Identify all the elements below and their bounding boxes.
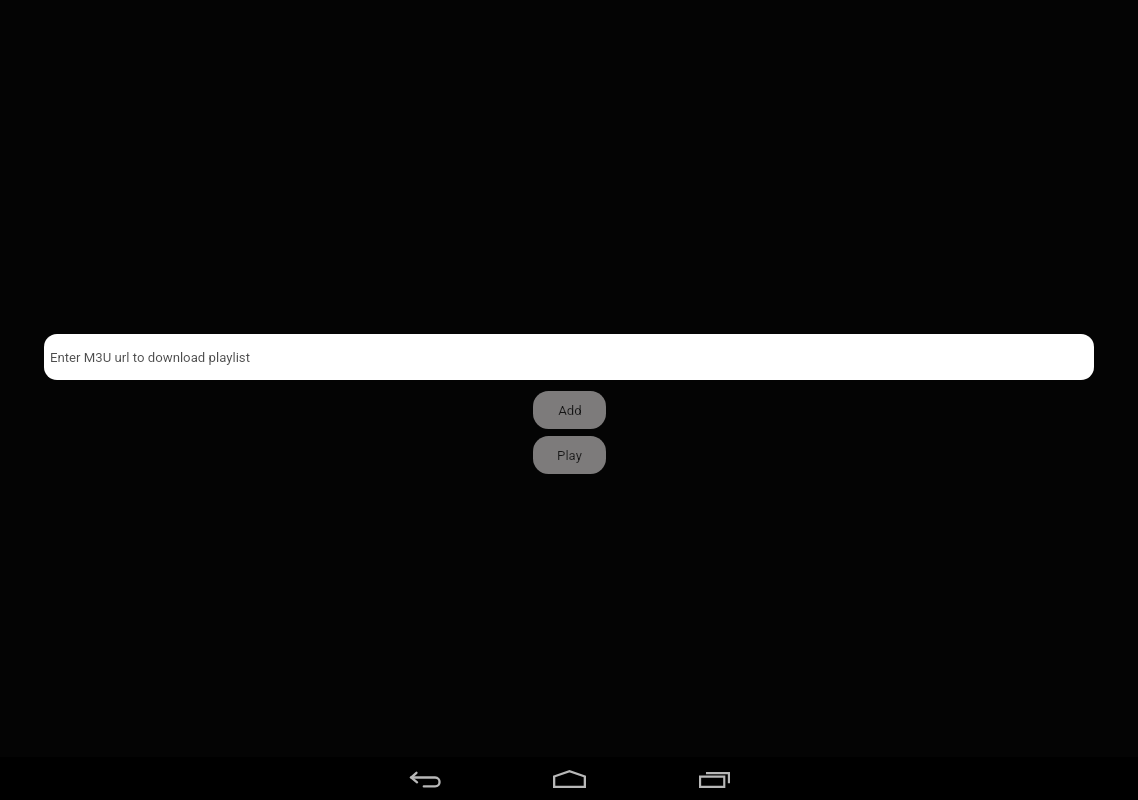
button[interactable]: Home	[533, 757, 605, 800]
staticText: Play	[557, 448, 582, 463]
button[interactable]: Enter M3U url to download playlist	[44, 334, 1094, 380]
button[interactable]: Add	[533, 391, 606, 429]
staticText: Enter M3U url to download playlist	[50, 350, 250, 365]
button[interactable]: Back	[389, 757, 461, 800]
staticText: Add	[558, 403, 582, 418]
button[interactable]: Recent apps	[678, 757, 750, 800]
button[interactable]: Play	[533, 436, 606, 474]
